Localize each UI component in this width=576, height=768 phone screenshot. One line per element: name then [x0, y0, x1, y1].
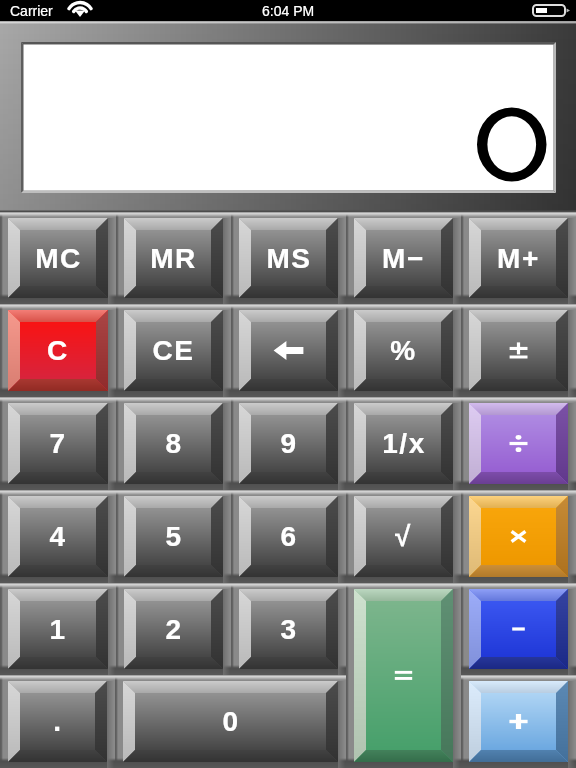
staticText: C	[47, 335, 69, 366]
button[interactable]: Backspace	[231, 304, 346, 397]
button[interactable]: 0	[115, 675, 346, 768]
button[interactable]: 1	[0, 583, 116, 675]
button[interactable]: Equals	[346, 583, 461, 768]
staticText: √	[395, 521, 412, 552]
staticText: MC	[35, 243, 82, 274]
button[interactable]: .	[0, 675, 115, 768]
staticText: .	[53, 706, 63, 737]
button[interactable]: MS	[231, 212, 346, 304]
button[interactable]: M+	[461, 212, 576, 304]
button[interactable]: 6	[231, 490, 346, 583]
staticText: Carrier	[10, 3, 53, 19]
button[interactable]: √	[346, 490, 461, 583]
staticText: 0	[222, 706, 240, 737]
button[interactable]: 8	[116, 397, 231, 490]
staticText: 9	[280, 428, 298, 459]
button[interactable]: 9	[231, 397, 346, 490]
button[interactable]: MC	[0, 212, 116, 304]
staticText: 1/x	[382, 428, 426, 459]
button[interactable]: 2	[116, 583, 231, 675]
staticText: 4	[49, 521, 67, 552]
button[interactable]: 7	[0, 397, 116, 490]
button[interactable]: 1/x	[346, 397, 461, 490]
staticText: 5	[165, 521, 183, 552]
button[interactable]: M−	[346, 212, 461, 304]
button[interactable]: %	[346, 304, 461, 397]
button[interactable]: Multiply	[461, 490, 576, 583]
staticText: MR	[150, 243, 197, 274]
button[interactable]: Plus	[461, 675, 576, 768]
button[interactable]: 3	[231, 583, 346, 675]
staticText: 3	[280, 614, 298, 645]
staticText: M−	[382, 243, 425, 274]
button[interactable]: 5	[116, 490, 231, 583]
button[interactable]: Divide	[461, 397, 576, 490]
button[interactable]: Plus or minus	[461, 304, 576, 397]
staticText: 7	[49, 428, 67, 459]
staticText: MS	[266, 243, 312, 274]
button[interactable]: C	[0, 304, 116, 397]
button[interactable]: CE	[116, 304, 231, 397]
button[interactable]: Minus	[461, 583, 576, 675]
staticText: CE	[152, 335, 195, 366]
staticText: 2	[165, 614, 183, 645]
staticText: 6:04 PM	[262, 3, 315, 19]
staticText: 1	[49, 614, 67, 645]
staticText: 6	[280, 521, 298, 552]
staticText: 8	[165, 428, 183, 459]
staticText: %	[390, 335, 417, 366]
button[interactable]: MR	[116, 212, 231, 304]
staticText: M+	[497, 243, 540, 274]
button[interactable]: 4	[0, 490, 116, 583]
